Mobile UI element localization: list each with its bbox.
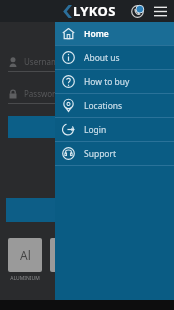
- button[interactable]: Home: [55, 22, 174, 45]
- button[interactable]: How to buy: [55, 70, 174, 93]
- staticText: Login: [84, 124, 107, 136]
- staticText: How to buy: [84, 76, 130, 88]
- staticText: Username: [24, 56, 63, 67]
- staticText: Locations: [84, 100, 123, 112]
- staticText: Al: [20, 247, 31, 263]
- button[interactable]: Login: [55, 118, 174, 141]
- staticText: Home: [84, 28, 109, 40]
- button[interactable]: Call 24 hour support: [128, 2, 146, 20]
- staticText: ALUMINIUM: [10, 275, 40, 282]
- staticText: Support: [84, 148, 117, 160]
- button[interactable]: Locations: [55, 94, 174, 117]
- button[interactable]: Support: [55, 142, 174, 165]
- staticText: LYKOS: [73, 2, 116, 20]
- button[interactable]: LYKOS: [61, 2, 118, 20]
- button[interactable]: Al: [8, 238, 42, 272]
- staticText: Password: [24, 88, 61, 99]
- button[interactable]: Menu: [150, 1, 170, 21]
- button[interactable]: A: [50, 238, 84, 272]
- staticText: About us: [84, 52, 120, 64]
- button[interactable]: About us: [55, 46, 174, 69]
- button[interactable]: [8, 116, 104, 138]
